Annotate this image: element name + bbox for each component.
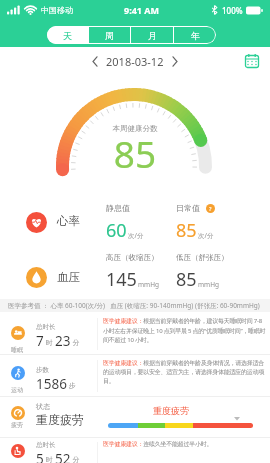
staticText: 周 [105,30,114,41]
staticText: 月 [148,30,157,41]
staticText: 85 [176,267,197,292]
staticText: 1586 [36,375,67,393]
staticText: 时 [44,338,55,348]
button[interactable]: 总时长 [0,437,270,463]
staticText: 7 [36,332,44,350]
button[interactable]: 运动 [0,354,270,396]
staticText: 步数 [36,366,49,374]
staticText: 145 [106,267,137,292]
staticText: 低压（舒张压） [176,253,229,262]
staticText: mmHg [138,280,159,289]
button[interactable]: 疲劳 [0,396,270,437]
staticText: 疲劳 [11,421,23,429]
staticText: 医学参考值 ： 心率 60-100(次/分) 血压 (收缩压: 90-140mm… [8,301,260,310]
staticText: 医学健康建议：根据当前穿戴者的年龄及身体情况，请选择适合的运动项目，要以安全、适… [103,359,266,385]
staticText: 总时长 [36,441,56,449]
button[interactable]: 心率 [0,192,270,248]
staticText: 分 [71,455,80,463]
button[interactable]: 年 [174,26,216,44]
staticText: 100% [222,5,243,16]
button[interactable]: 睡眠 [0,312,270,354]
staticText: 85 [0,128,270,178]
button[interactable]: 2018-03-12 [92,54,178,69]
staticText: 日常值 [176,203,200,213]
staticText: 高压（收缩压） [106,253,159,262]
staticText: 运动 [11,386,23,394]
staticText: 次/分 [198,231,214,240]
staticText: 状态 [36,402,50,411]
staticText: 心率 [57,214,80,228]
button[interactable] [245,54,259,68]
staticText: 5 [36,450,44,463]
staticText: 分 [71,338,80,348]
staticText: 血压 [57,270,80,284]
staticText: 中国移动 [41,5,73,15]
staticText: 85 [176,218,197,243]
staticText: 年 [191,30,200,41]
staticText: 9:41 AM [124,4,160,16]
staticText: 23 [55,332,71,350]
staticText: 医学健康建议：连续久坐不能超过半小时。 [103,440,266,448]
staticText: 60 [106,218,127,243]
staticText: 时 [44,455,55,463]
button[interactable]: 血压 [0,248,270,299]
staticText: 本周健康分数 [0,124,270,133]
button[interactable]: 周 [89,26,130,44]
staticText: 重度疲劳 [153,405,189,416]
staticText: ? [209,205,212,212]
staticText: 2018-03-12 [106,54,164,69]
staticText: 步 [67,381,76,391]
button[interactable]: 天 [47,26,88,44]
staticText: 52 [55,450,71,463]
staticText: 静息值 [106,203,130,213]
button[interactable]: 月 [131,26,173,44]
staticText: 总时长 [36,323,56,331]
staticText: mmHg [198,280,219,289]
staticText: 睡眠 [11,346,23,354]
staticText: 次/分 [128,231,144,240]
staticText: 医学健康建议：根据当前穿戴者的年龄，建议每天睡眠时间 7-8 小时左右并保证晚上… [103,317,266,344]
staticText: 重度疲劳 [36,412,84,427]
staticText: 天 [63,30,72,41]
